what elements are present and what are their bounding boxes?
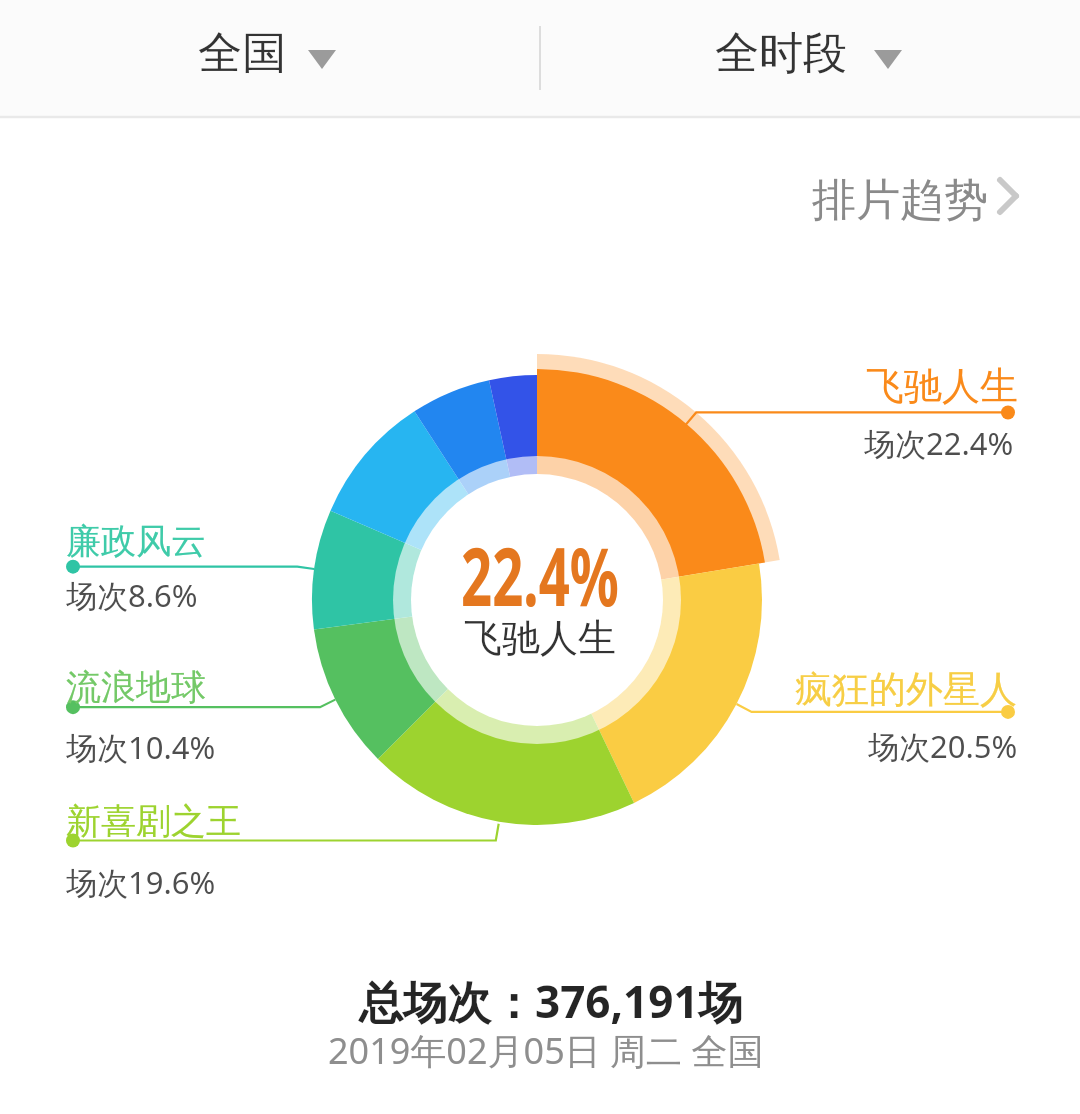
staticText: 场次8.6% bbox=[66, 574, 198, 616]
staticText: 2019年02月05日 周二 全国 bbox=[328, 1026, 764, 1075]
staticText: 廉政风云 bbox=[66, 519, 206, 563]
staticText: 疯狂的外星人 bbox=[795, 666, 1017, 713]
staticText: 飞驰人生 bbox=[866, 362, 1018, 410]
staticText: 全时段 bbox=[715, 26, 847, 81]
staticText: 场次10.4% bbox=[66, 726, 216, 768]
staticText: 流浪地球 bbox=[66, 665, 206, 709]
staticText: 场次19.6% bbox=[66, 861, 216, 903]
staticText: 场次20.5% bbox=[868, 725, 1018, 767]
staticText: 飞驰人生 bbox=[464, 614, 616, 662]
staticText: 全国 bbox=[198, 26, 286, 81]
staticText: 排片趋势 bbox=[812, 173, 988, 228]
staticText: 新喜剧之王 bbox=[66, 799, 241, 843]
staticText: 22.4% bbox=[461, 520, 619, 629]
staticText: 总场次：376,191场 bbox=[359, 971, 743, 1031]
staticText: 场次22.4% bbox=[864, 422, 1014, 464]
